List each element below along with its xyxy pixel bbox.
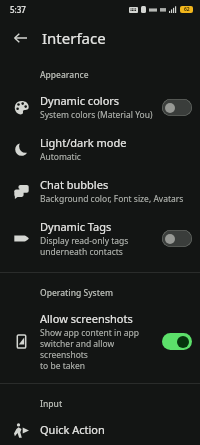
staticText: Background color, Font size, Avatars	[40, 193, 184, 205]
staticText: Quick Action	[40, 422, 105, 437]
staticText: Chat bubbles	[40, 177, 109, 192]
staticText: Show app content in app switcher and all…	[40, 327, 156, 371]
staticText: Operating System	[40, 287, 113, 299]
staticText: System colors (Material You)	[40, 109, 153, 121]
staticText: Dynamic Tags	[40, 219, 112, 234]
button[interactable]: Dynamic colors	[0, 86, 200, 128]
button[interactable]: Dynamic Tags	[0, 212, 200, 264]
staticText: 62	[184, 6, 190, 13]
staticText: 5:37	[10, 4, 26, 15]
button[interactable]: Back	[4, 22, 36, 54]
button[interactable]: On	[162, 333, 192, 350]
staticText: Allow screenshots	[40, 311, 133, 326]
staticText: Input	[40, 398, 63, 410]
button[interactable]: Chat bubbles	[0, 170, 200, 212]
button[interactable]: Off	[162, 99, 192, 116]
staticText: Interface	[42, 28, 106, 48]
staticText: Display read-only tags underneath contac…	[40, 235, 129, 257]
staticText: Light/dark mode	[40, 135, 127, 150]
button[interactable]: Quick Action	[0, 415, 200, 445]
staticText: Appearance	[40, 69, 89, 81]
button[interactable]: Allow screenshots	[0, 304, 200, 378]
staticText: Automatic	[40, 151, 81, 163]
button[interactable]: Off	[162, 230, 192, 247]
staticText: Dynamic colors	[40, 93, 120, 108]
button[interactable]: Light/dark mode	[0, 128, 200, 170]
